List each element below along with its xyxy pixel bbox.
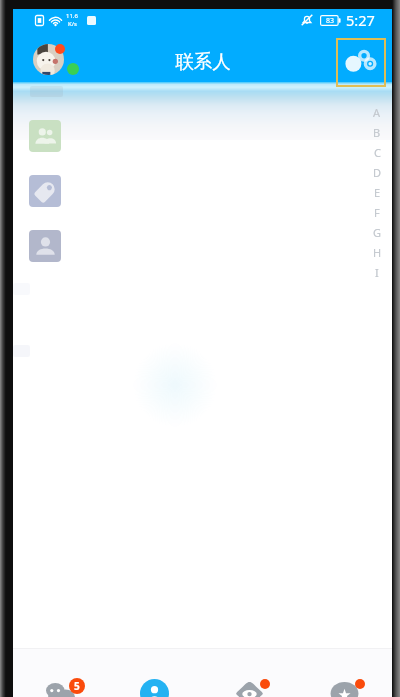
- staticText: G: [373, 225, 382, 240]
- button[interactable]: [13, 220, 392, 272]
- button[interactable]: Add contact: [336, 38, 386, 87]
- button[interactable]: [13, 165, 392, 217]
- staticText: 5:27: [346, 10, 375, 30]
- staticText: D: [373, 165, 382, 180]
- staticText: 5: [74, 679, 80, 693]
- staticText: 11.6: [66, 12, 78, 20]
- staticText: 联系人: [175, 50, 231, 73]
- button[interactable]: [13, 110, 392, 162]
- button[interactable]: Discover: [202, 648, 297, 697]
- staticText: I: [375, 265, 379, 280]
- button[interactable]: Me: [297, 648, 392, 697]
- staticText: E: [374, 185, 381, 200]
- button[interactable]: Chats: [13, 648, 107, 697]
- staticText: A: [373, 105, 381, 120]
- button[interactable]: Contacts: [107, 648, 202, 697]
- staticText: F: [374, 205, 380, 220]
- staticText: K/s: [68, 20, 77, 28]
- staticText: C: [374, 145, 381, 160]
- staticText: H: [373, 245, 382, 260]
- staticText: B: [373, 125, 381, 140]
- button[interactable]: Profile: [33, 44, 64, 75]
- staticText: 83: [326, 16, 335, 26]
